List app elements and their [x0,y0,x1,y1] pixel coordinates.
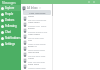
staticText: Explore [5,6,15,10]
button[interactable]: Sofia Clark [21,63,100,69]
staticText: Liam Smith [28,21,40,24]
staticText: Ava [28,39,32,42]
staticText: Settings [5,42,15,46]
staticText: Devices [5,18,15,22]
button[interactable]: Noah Davis [21,33,100,39]
staticText: Call me back later [28,55,46,57]
staticText: Messages [2,1,16,5]
staticText: Olivia [28,15,34,18]
staticText: New message [29,11,46,14]
staticText: Notifications [5,36,21,40]
button[interactable]: Following [0,23,21,29]
staticText: All Inbox [27,6,38,10]
staticText: See you tomorrow [28,19,47,21]
button[interactable]: Emma [21,27,100,33]
staticText: Emma [28,27,35,30]
button[interactable]: Explore [0,5,21,11]
button[interactable]: Notifications [0,35,21,41]
button[interactable]: Olivia [21,15,100,21]
button[interactable]: Ava [21,39,100,45]
staticText: People [5,12,14,16]
staticText: Chat [5,30,11,34]
staticText: Thanks a lot, great [28,25,47,27]
staticText: Mia Moore [28,51,40,54]
button[interactable]: Mia Moore [21,51,100,57]
staticText: Sent you the files [28,61,45,63]
button[interactable]: People [0,11,21,17]
staticText: Great work today [28,49,45,51]
button[interactable]: Chat [0,29,21,35]
staticText: Lucas [28,57,34,60]
staticText: Noah Davis [28,33,40,36]
button[interactable]: Ethan W. [21,45,100,51]
staticText: On my way now [28,37,44,39]
staticText: Following [5,24,17,28]
button[interactable]: All Inbox [22,5,50,10]
button[interactable]: Lucas [21,57,100,63]
button[interactable]: Liam Smith [21,21,100,27]
button[interactable]: Devices [0,17,21,23]
staticText: Meet at five today [28,43,46,45]
staticText: Sounds good to me [28,31,48,33]
staticText: Ethan W. [28,45,38,48]
button[interactable]: Settings [0,41,21,47]
staticText: Almost there now [28,67,46,69]
button[interactable]: New message [23,10,51,15]
staticText: Sofia Clark [28,63,39,66]
